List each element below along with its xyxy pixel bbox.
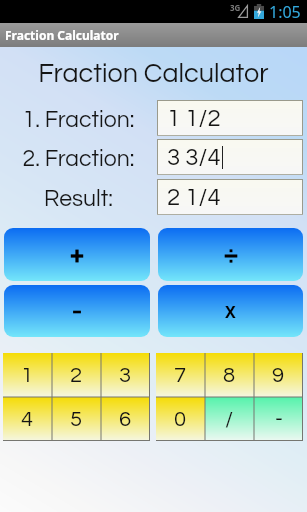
button[interactable]: 3	[101, 353, 150, 397]
staticText: 2 1/4	[167, 185, 221, 210]
button[interactable]: 1	[3, 353, 52, 397]
staticText: 0	[174, 408, 187, 431]
button[interactable]: 2 1/4	[157, 179, 303, 215]
staticText: 5	[70, 408, 83, 431]
button[interactable]: 8	[205, 353, 254, 397]
button[interactable]: /	[205, 397, 254, 441]
staticText: 1 1/2	[167, 106, 221, 131]
staticText: X	[225, 301, 236, 323]
button[interactable]: 1 1/2	[157, 100, 303, 136]
button[interactable]: Add	[4, 228, 150, 281]
staticText: 3 3/4	[167, 145, 221, 170]
staticText: -	[275, 408, 283, 431]
staticText: 7	[174, 364, 187, 387]
staticText: Result:	[0, 187, 157, 211]
button[interactable]: 7	[156, 353, 205, 397]
button[interactable]: Multiply	[158, 285, 303, 337]
button[interactable]: 2	[52, 353, 101, 397]
staticText: Fraction Calculator	[0, 60, 307, 88]
button[interactable]: 4	[3, 397, 52, 441]
staticText: 8	[223, 364, 236, 387]
button[interactable]: -	[254, 397, 303, 441]
staticText: 4	[21, 408, 34, 431]
button[interactable]: 6	[101, 397, 150, 441]
staticText: 6	[119, 408, 132, 431]
staticText: Fraction Calculator	[5, 27, 119, 43]
staticText: 2	[70, 364, 83, 387]
staticText: /	[225, 408, 234, 431]
staticText: 9	[272, 364, 285, 387]
staticText: 1. Fraction:	[0, 108, 157, 132]
staticText: 3G	[230, 2, 241, 13]
button[interactable]: 0	[156, 397, 205, 441]
staticText: 3	[119, 364, 132, 387]
staticText: 2. Fraction:	[0, 147, 157, 171]
button[interactable]: Subtract	[4, 285, 150, 337]
button[interactable]: 3 3/4	[157, 139, 303, 175]
staticText: 1	[21, 364, 34, 387]
button[interactable]: 9	[254, 353, 303, 397]
staticText: 1:05	[269, 1, 301, 23]
button[interactable]: Divide	[158, 228, 303, 281]
button[interactable]: 5	[52, 397, 101, 441]
